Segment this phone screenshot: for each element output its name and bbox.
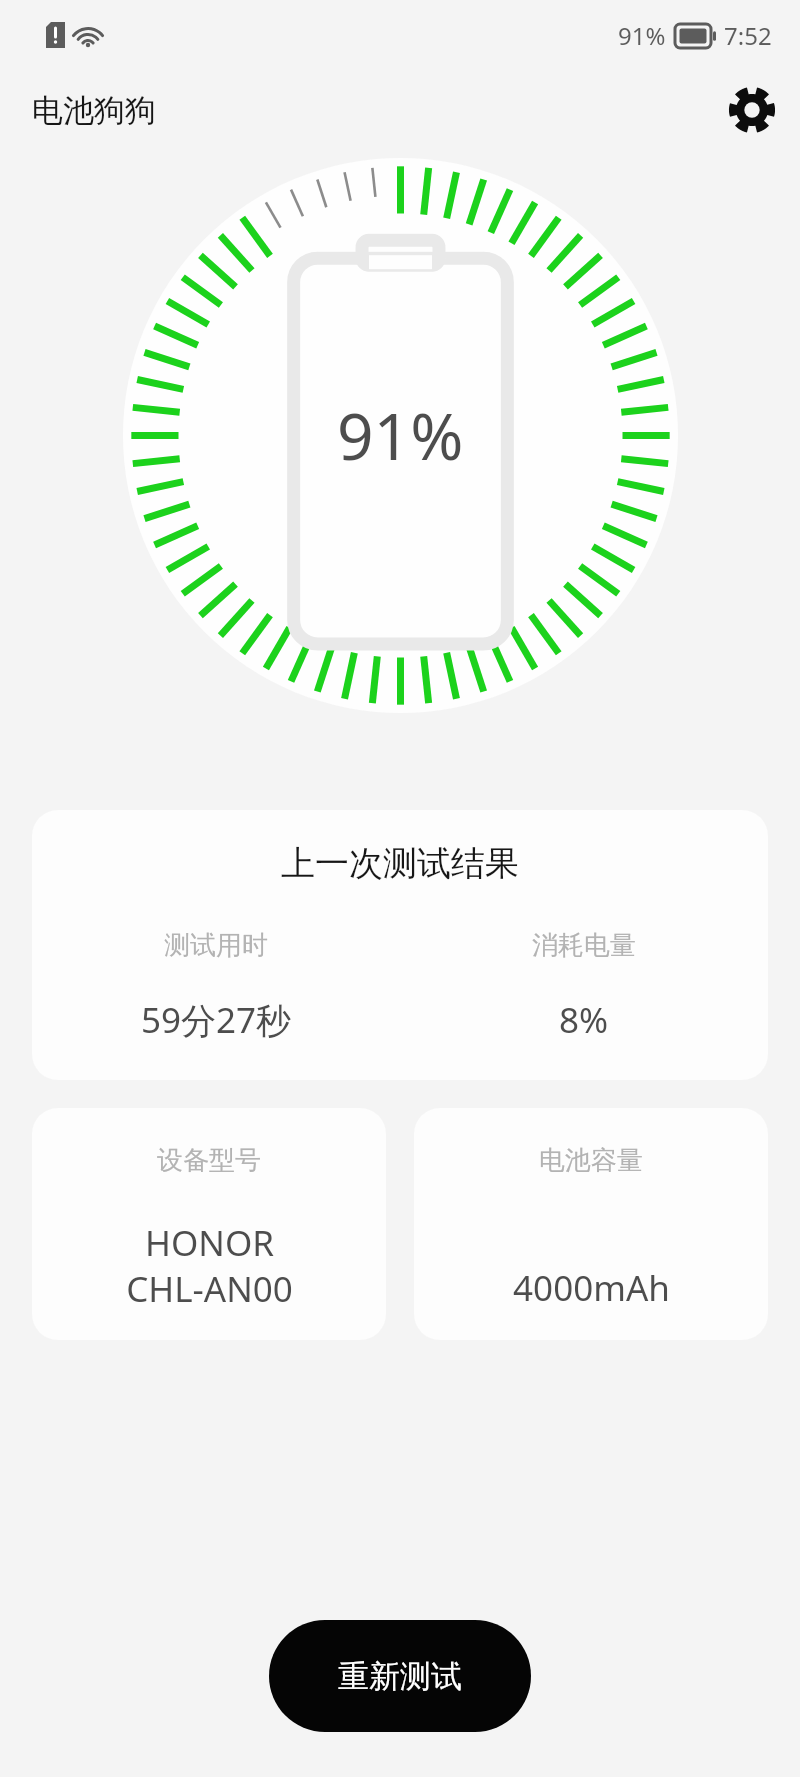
staticText: 测试用时 — [164, 929, 268, 962]
button[interactable]: 上一次测试结果 — [32, 810, 768, 1080]
staticText: 7:52 — [724, 19, 772, 52]
button[interactable]: 电池容量 — [414, 1108, 768, 1340]
staticText: 设备型号 — [157, 1144, 261, 1177]
button[interactable]: 重新测试 — [269, 1620, 531, 1732]
staticText: 91% — [337, 392, 464, 479]
staticText: 上一次测试结果 — [32, 842, 768, 885]
staticText: 59分27秒 — [141, 996, 292, 1044]
staticText: 重新测试 — [338, 1657, 462, 1696]
button[interactable]: 设备型号 — [32, 1108, 386, 1340]
staticText: 4000mAh — [513, 1264, 670, 1312]
staticText: 电池容量 — [539, 1144, 643, 1177]
staticText: 消耗电量 — [532, 929, 636, 962]
staticText: 91% — [618, 19, 666, 52]
staticText: HONOR CHL-AN00 — [126, 1219, 293, 1312]
staticText: 8% — [559, 996, 609, 1044]
button[interactable]: Settings — [716, 74, 788, 146]
staticText: 电池狗狗 — [32, 91, 156, 130]
